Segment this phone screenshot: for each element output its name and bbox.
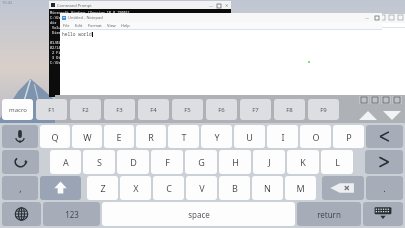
button[interactable]: Shift lock — [359, 96, 369, 104]
button[interactable]: Scroll up — [358, 110, 378, 121]
button[interactable]: F3 — [104, 99, 135, 120]
staticText: Help — [121, 23, 130, 28]
button[interactable]: W — [72, 125, 102, 148]
button[interactable]: E — [104, 125, 134, 148]
button[interactable]: Next — [365, 150, 403, 174]
button[interactable]: X — [120, 176, 151, 200]
staticText: — — [209, 3, 213, 8]
staticText: 01/02/2024 — [50, 40, 71, 45]
button[interactable]: L — [321, 150, 353, 174]
button[interactable]: T — [168, 125, 199, 148]
button[interactable]: space — [102, 202, 295, 226]
button[interactable]: Alt — [381, 96, 391, 104]
staticText: F4 — [150, 106, 157, 114]
button[interactable]: Change keyboard — [2, 202, 41, 226]
button[interactable]: P — [333, 125, 364, 148]
button[interactable]: F1 — [36, 99, 67, 120]
staticText: E — [116, 131, 122, 143]
staticText: U — [246, 131, 253, 143]
staticText: J — [268, 156, 271, 168]
button[interactable]: K — [287, 150, 319, 174]
staticText: D — [130, 156, 137, 168]
button[interactable]: N — [252, 176, 283, 200]
button[interactable]: , — [2, 176, 38, 200]
button[interactable]: S — [83, 150, 115, 174]
button[interactable]: Q — [40, 125, 70, 148]
button[interactable]: R — [136, 125, 166, 148]
button[interactable]: O — [300, 125, 331, 148]
button[interactable]: F9 — [308, 99, 339, 120]
staticText: M — [296, 182, 305, 194]
staticText: C — [166, 182, 172, 194]
staticText: File — [63, 23, 70, 28]
staticText: , — [19, 182, 22, 194]
staticText: dir — [50, 20, 57, 25]
staticText: F7 — [252, 106, 259, 114]
button[interactable]: return — [297, 202, 361, 226]
button[interactable]: I — [267, 125, 298, 148]
button[interactable]: Undo — [2, 150, 39, 174]
button[interactable]: F6 — [206, 99, 237, 120]
staticText: Y — [214, 131, 220, 143]
staticText: G — [198, 156, 205, 168]
button[interactable]: macro — [2, 99, 33, 120]
button[interactable]: Shift — [40, 176, 81, 200]
button[interactable]: F — [151, 150, 183, 174]
button[interactable]: U — [234, 125, 265, 148]
button[interactable]: D — [117, 150, 149, 174]
button[interactable]: V — [186, 176, 217, 200]
staticText: F6 — [218, 106, 225, 114]
button[interactable]: F7 — [240, 99, 271, 120]
staticText: return — [317, 209, 341, 220]
button[interactable]: G — [185, 150, 217, 174]
button[interactable]: A — [50, 150, 81, 174]
staticText: F2 — [82, 106, 89, 114]
staticText: Q — [51, 131, 59, 143]
staticText: F — [165, 156, 170, 168]
staticText: macro — [9, 106, 27, 114]
button[interactable]: F4 — [138, 99, 169, 120]
staticText: Edit — [75, 23, 83, 28]
staticText: Z — [100, 182, 106, 194]
staticText: N — [264, 182, 271, 194]
staticText: Command Prompt — [57, 3, 92, 8]
button[interactable]: C — [153, 176, 184, 200]
button[interactable]: J — [253, 150, 285, 174]
button[interactable]: F5 — [172, 99, 203, 120]
button[interactable]: Previous — [366, 125, 403, 148]
staticText: B — [232, 182, 238, 194]
staticText: 02/14/2024 — [50, 45, 71, 50]
button[interactable]: Scroll down — [382, 110, 402, 121]
staticText: . — [383, 182, 386, 194]
staticText: hello world — [62, 31, 92, 37]
button[interactable]: Hide keyboard — [363, 202, 403, 226]
staticText: F8 — [286, 106, 293, 114]
button[interactable]: Tab — [392, 96, 402, 104]
staticText: F9 — [320, 106, 327, 114]
staticText: L — [335, 156, 340, 168]
staticText: — — [365, 15, 369, 20]
button[interactable]: . — [366, 176, 403, 200]
staticText: Format — [88, 23, 102, 28]
button[interactable]: Backspace — [322, 176, 364, 200]
button[interactable]: F8 — [274, 99, 305, 120]
button[interactable]: Control — [370, 96, 380, 104]
staticText: C:\Users>_ — [50, 60, 71, 65]
button[interactable]: Dictate — [2, 125, 38, 148]
button[interactable]: H — [219, 150, 251, 174]
button[interactable]: Z — [87, 176, 118, 200]
button[interactable]: M — [285, 176, 316, 200]
button[interactable]: B — [219, 176, 250, 200]
staticText: W — [83, 131, 92, 143]
button[interactable]: 123 — [43, 202, 100, 226]
staticText: A — [63, 156, 69, 168]
staticText: Microsoft Windows [Version 10.0.19045] — [50, 10, 130, 15]
staticText: Volume in — [50, 25, 71, 30]
staticText: space — [188, 209, 210, 220]
button[interactable]: Y — [201, 125, 232, 148]
button[interactable]: F2 — [70, 99, 101, 120]
staticText: Untitled - Notepad — [68, 15, 103, 20]
staticText: T — [181, 131, 187, 143]
staticText: V — [199, 182, 205, 194]
staticText: C:\Users> — [50, 15, 69, 20]
